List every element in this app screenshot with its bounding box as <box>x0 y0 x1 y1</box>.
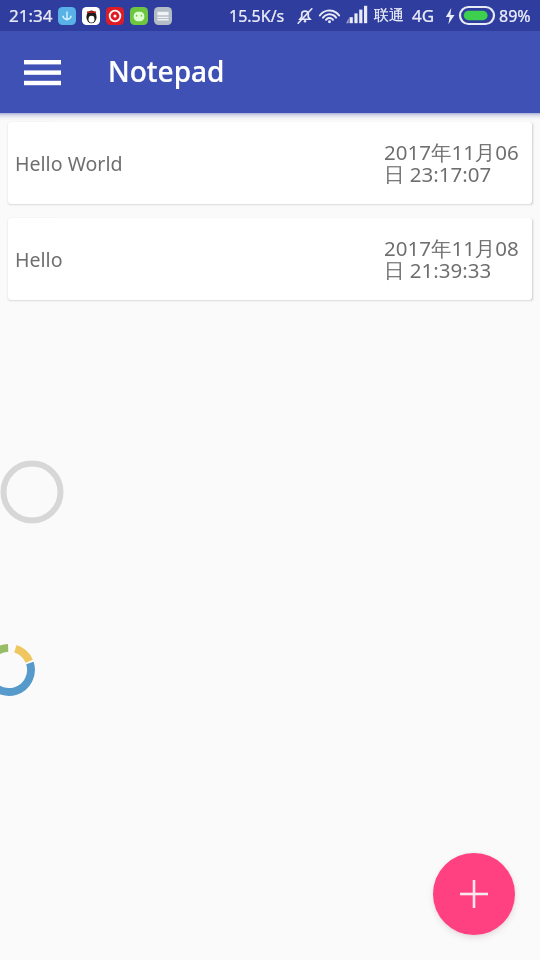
button[interactable]: Hello World <box>8 122 532 204</box>
staticText: 21:34 <box>9 4 53 27</box>
staticText: Hello <box>15 246 63 273</box>
button[interactable]: Add note <box>433 853 515 935</box>
staticText: 2017年11月06 日 23:17:07 <box>384 138 519 188</box>
staticText: 4G <box>412 4 435 27</box>
button[interactable]: Open navigation menu <box>14 44 70 100</box>
staticText: 2017年11月08 日 21:39:33 <box>384 234 519 284</box>
staticText: 15.5K/s <box>229 5 285 27</box>
staticText: 89% <box>499 5 531 27</box>
staticText: 联通 <box>374 6 404 25</box>
staticText: Hello World <box>15 150 123 177</box>
button[interactable]: Hello <box>8 218 532 300</box>
staticText: Notepad <box>108 52 225 90</box>
